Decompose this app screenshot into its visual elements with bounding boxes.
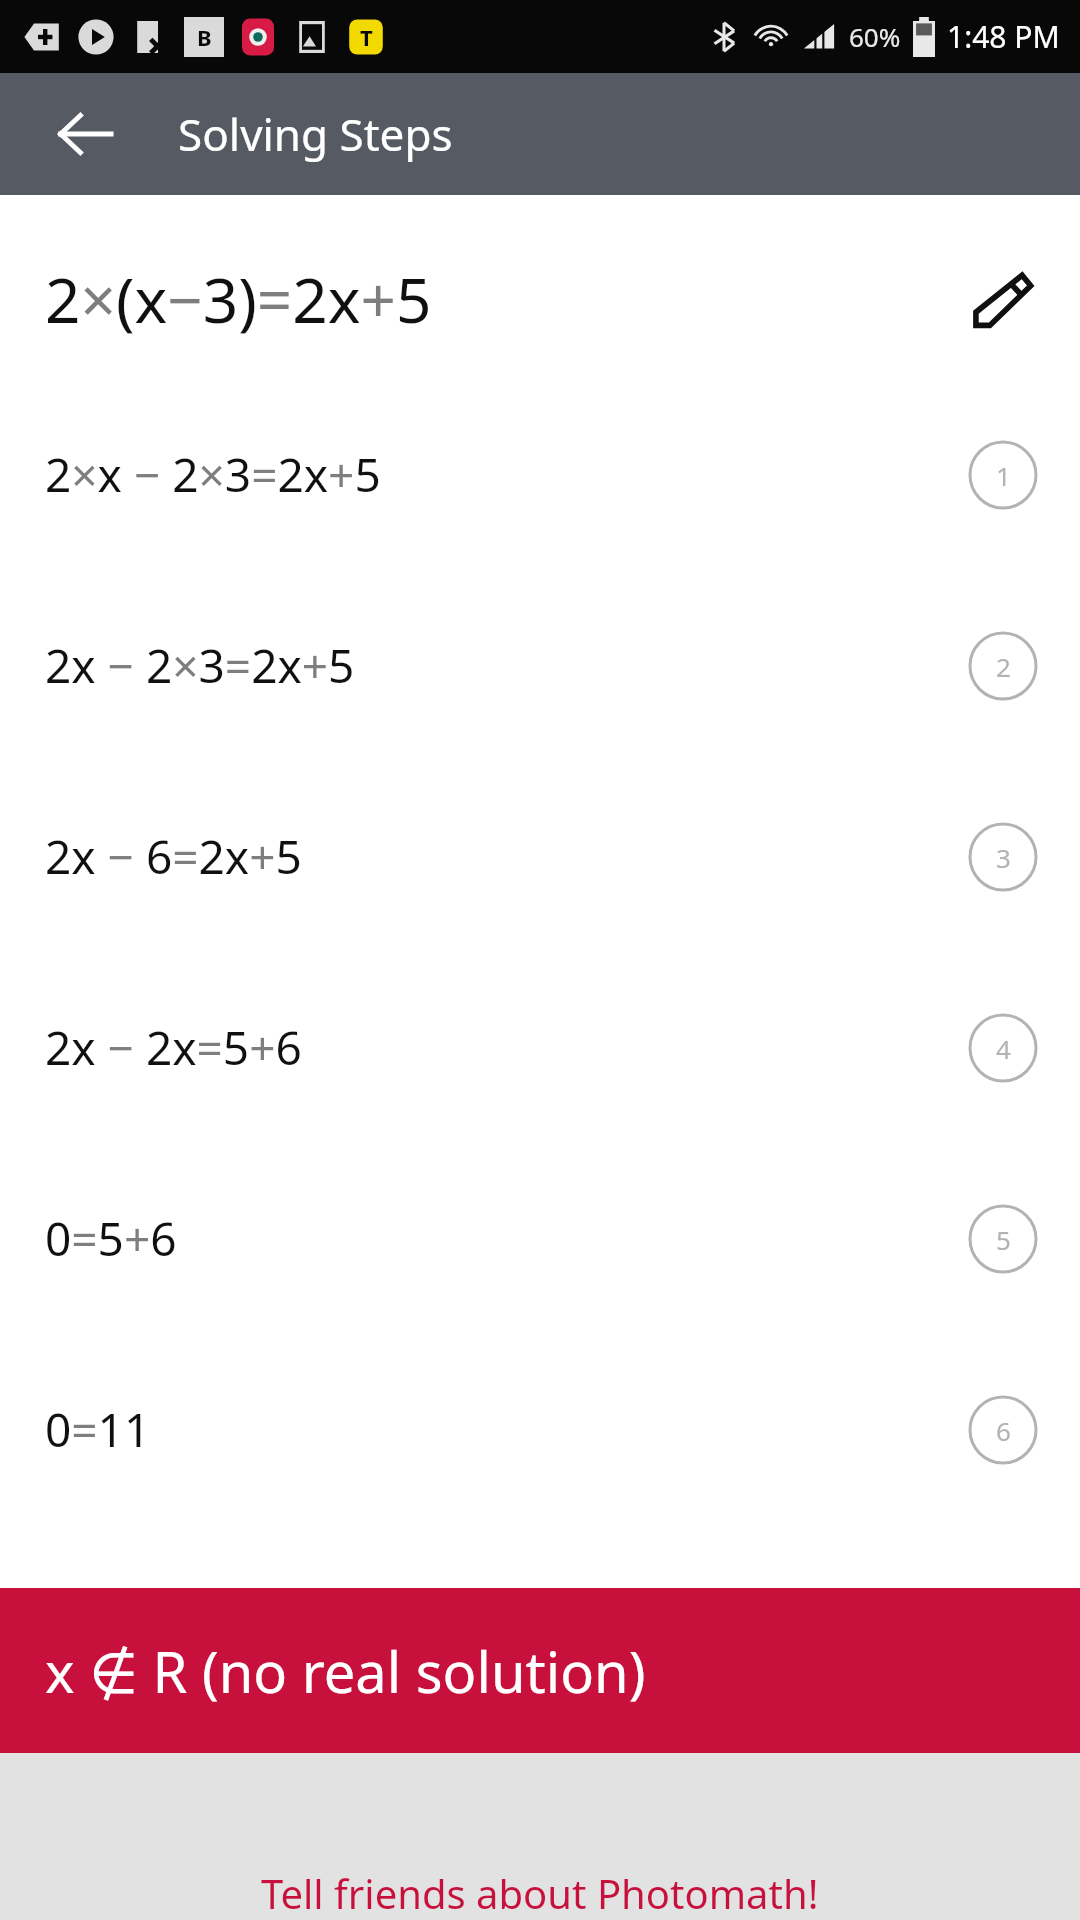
staticText: Solving Steps bbox=[178, 104, 453, 164]
button[interactable]: Step 2 details bbox=[968, 631, 1038, 701]
staticText: T bbox=[360, 22, 373, 52]
button[interactable]: Step 4 details bbox=[968, 1013, 1038, 1083]
staticText: 1 bbox=[996, 458, 1011, 493]
button[interactable]: 2x − 6=2x+5 bbox=[0, 761, 1080, 952]
staticText: 6 bbox=[996, 1413, 1011, 1448]
staticText: 2x − 6=2x+5 bbox=[45, 825, 302, 888]
button[interactable]: 2x − 2x=5+6 bbox=[0, 952, 1080, 1143]
staticText: 3 bbox=[996, 840, 1011, 875]
staticText: 2×x − 2×3=2x+5 bbox=[45, 443, 381, 506]
button[interactable]: 2x − 2×3=2x+5 bbox=[0, 570, 1080, 761]
button[interactable]: Step 3 details bbox=[968, 822, 1038, 892]
button[interactable]: 0=5+6 bbox=[0, 1143, 1080, 1334]
button[interactable]: 2×(x−3)=2x+5 bbox=[0, 219, 1080, 379]
staticText: Tell friends about Photomath! bbox=[261, 1866, 819, 1920]
button[interactable]: 0=11 bbox=[0, 1334, 1080, 1525]
staticText: 2x − 2x=5+6 bbox=[45, 1016, 302, 1079]
button[interactable]: Step 6 details bbox=[968, 1395, 1038, 1465]
button[interactable]: 2×x − 2×3=2x+5 bbox=[0, 379, 1080, 570]
button[interactable]: Step 5 details bbox=[968, 1204, 1038, 1274]
staticText: 4 bbox=[996, 1031, 1011, 1066]
button[interactable]: Back bbox=[42, 91, 128, 177]
staticText: 1:48 PM bbox=[947, 16, 1060, 57]
button[interactable]: Step 1 details bbox=[968, 440, 1038, 510]
button[interactable]: x ∉ R (no real solution) bbox=[0, 1588, 1080, 1753]
staticText: B bbox=[197, 22, 212, 52]
staticText: 5 bbox=[996, 1222, 1011, 1257]
staticText: 2 bbox=[996, 649, 1011, 684]
button[interactable]: Tell friends about Photomath! bbox=[0, 1753, 1080, 1920]
button[interactable]: Edit equation bbox=[962, 260, 1040, 338]
staticText: 0=11 bbox=[45, 1398, 151, 1461]
staticText: 2×(x−3)=2x+5 bbox=[45, 257, 432, 341]
staticText: 0=5+6 bbox=[45, 1207, 177, 1270]
staticText: x ∉ R (no real solution) bbox=[45, 1633, 646, 1709]
staticText: 60% bbox=[849, 19, 901, 54]
staticText: 2x − 2×3=2x+5 bbox=[45, 634, 355, 697]
